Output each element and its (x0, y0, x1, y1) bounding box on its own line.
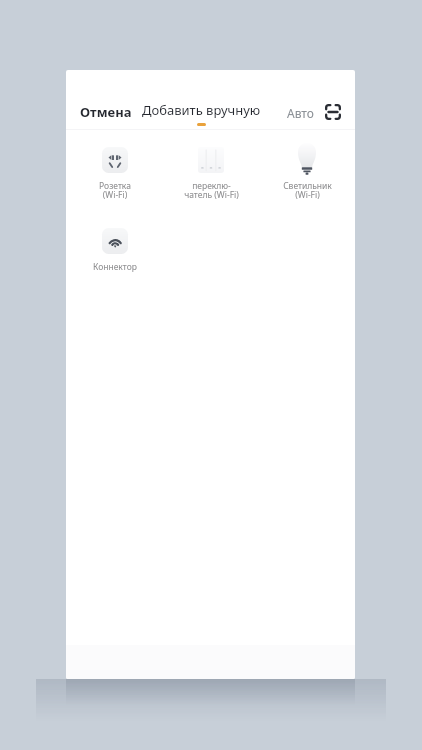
button[interactable]: Отмена (78, 100, 134, 124)
staticText: Розетка (Wi-Fi) (99, 180, 131, 201)
button[interactable]: Scan QR code (325, 104, 341, 120)
staticText: Светильник (Wi-Fi) (283, 180, 332, 201)
button[interactable]: переклю- чатель (Wi-Fi) (163, 147, 259, 228)
staticText: Отмена (80, 103, 132, 121)
staticText: Коннектор (93, 261, 137, 273)
button[interactable]: Добавить вручную (140, 101, 263, 126)
staticText: переклю- чатель (Wi-Fi) (184, 180, 239, 201)
button[interactable]: Светильник (Wi-Fi) (259, 147, 355, 228)
staticText: Добавить вручную (142, 101, 261, 119)
button[interactable]: Розетка (Wi-Fi) (66, 147, 163, 228)
button[interactable]: Авто (285, 102, 316, 124)
staticText: Авто (287, 105, 314, 121)
button[interactable]: Коннектор (66, 228, 163, 300)
